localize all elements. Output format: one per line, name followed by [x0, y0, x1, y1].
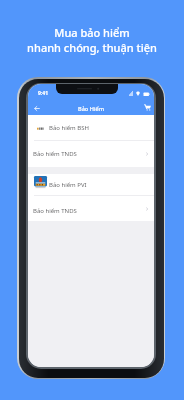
- staticText: nhanh chóng, thuận tiện: [27, 40, 157, 55]
- button[interactable]: Shopping cart: [140, 97, 154, 117]
- staticText: Bảo Hiểm: [78, 105, 104, 113]
- staticText: Mua bảo hiểm: [54, 25, 130, 40]
- staticText: 9:41: [38, 90, 48, 97]
- button[interactable]: Bảo hiểm BSH: [28, 115, 154, 140]
- button[interactable]: Bảo hiểm PVI: [28, 174, 154, 195]
- staticText: Bảo hiểm BSH: [49, 124, 89, 132]
- button[interactable]: Bảo hiểm TNDS: [28, 196, 154, 221]
- staticText: Bảo hiểm TNDS: [33, 150, 77, 158]
- button[interactable]: Bảo hiểm TNDS: [28, 141, 154, 167]
- staticText: Bảo hiểm PVI: [49, 181, 87, 189]
- staticText: Bảo hiểm TNDS: [33, 207, 77, 215]
- button[interactable]: Back: [29, 98, 44, 118]
